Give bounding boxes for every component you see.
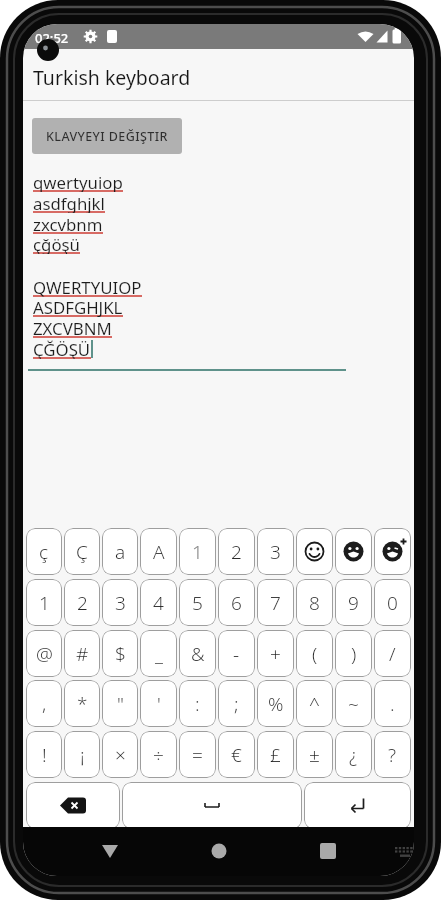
button[interactable]: ¿ — [335, 731, 372, 778]
button[interactable]: ÷ — [140, 731, 177, 778]
button[interactable]: " — [102, 680, 138, 727]
button[interactable]: ^ — [296, 680, 333, 727]
button[interactable] — [23, 827, 154, 876]
staticText: Turkish keyboard — [33, 64, 191, 91]
button[interactable]: 6 — [218, 579, 255, 626]
button[interactable]: 8 — [296, 579, 333, 626]
staticText: 02:52 — [35, 29, 69, 47]
staticText: @ — [36, 641, 53, 667]
staticText: QWERTYUIOP — [33, 276, 142, 297]
button[interactable]: ; — [218, 680, 255, 727]
button[interactable]: 2 — [64, 579, 100, 626]
button[interactable] — [122, 782, 302, 829]
button[interactable]: Ç — [64, 528, 100, 575]
staticText: e3 — [382, 539, 404, 565]
staticText: ^ — [309, 691, 320, 717]
staticText: asdfghjkl — [33, 192, 105, 213]
button[interactable]: 1 — [179, 528, 216, 575]
button[interactable]: ? — [374, 731, 411, 778]
button[interactable]: & — [179, 630, 216, 677]
button[interactable]: ! — [26, 731, 62, 778]
staticText: e1 — [304, 539, 326, 565]
button[interactable]: ± — [296, 731, 333, 778]
button[interactable]: 1 — [26, 579, 62, 626]
button[interactable]: : — [179, 680, 216, 727]
button[interactable]: e1 — [296, 528, 333, 575]
button[interactable]: $ — [102, 630, 138, 677]
button[interactable]: 7 — [257, 579, 294, 626]
button[interactable]: _ — [140, 630, 177, 677]
button[interactable]: ) — [335, 630, 372, 677]
button[interactable] — [374, 528, 411, 575]
staticText: ÷ — [153, 742, 164, 768]
staticText: zxcvbnm — [33, 213, 103, 234]
button[interactable]: / — [374, 630, 411, 677]
staticText: ) — [351, 641, 357, 667]
button[interactable] — [284, 827, 414, 876]
staticText: ! — [42, 742, 47, 768]
staticText: ? — [388, 742, 397, 768]
button[interactable]: × — [102, 731, 138, 778]
staticText: : — [195, 691, 200, 717]
button[interactable]: # — [64, 630, 100, 677]
button[interactable]: . — [374, 680, 411, 727]
button[interactable]: 4 — [140, 579, 177, 626]
button[interactable]: a — [102, 528, 138, 575]
staticText: ÇĞÖŞÜ — [33, 338, 91, 359]
button[interactable]: e2 — [335, 528, 372, 575]
button[interactable]: 3 — [102, 579, 138, 626]
button[interactable]: A — [140, 528, 177, 575]
button[interactable]: * — [64, 680, 100, 727]
staticText: 7 — [270, 590, 281, 616]
button[interactable]: 3 — [257, 528, 294, 575]
staticText: çğöşü — [33, 233, 80, 254]
button[interactable]: e3 — [374, 528, 411, 575]
button[interactable]: 5 — [179, 579, 216, 626]
button[interactable] — [154, 827, 284, 876]
button[interactable]: ~ — [335, 680, 372, 727]
button[interactable]: ç — [26, 528, 62, 575]
staticText: , — [42, 691, 47, 717]
button[interactable]: KLAVYEYI DEĞIŞTIR — [32, 118, 182, 154]
button[interactable]: 0 — [374, 579, 411, 626]
button[interactable]: ( — [296, 630, 333, 677]
staticText: ASDFGHJKL — [33, 296, 123, 317]
staticText: × — [115, 742, 126, 768]
staticText: 6 — [231, 590, 242, 616]
button[interactable] — [335, 528, 372, 575]
button[interactable] — [304, 782, 411, 829]
button[interactable]: € — [218, 731, 255, 778]
staticText: % — [268, 691, 284, 717]
button[interactable]: - — [218, 630, 255, 677]
button[interactable]: ' — [140, 680, 177, 727]
button[interactable]: % — [257, 680, 294, 727]
staticText: KLAVYEYI DEĞIŞTIR — [46, 128, 168, 145]
button[interactable]: , — [26, 680, 62, 727]
staticText: 3 — [270, 539, 281, 565]
staticText: * — [77, 691, 88, 717]
staticText: ~ — [348, 691, 359, 717]
button[interactable] — [26, 782, 120, 829]
staticText: 8 — [309, 590, 320, 616]
staticText: a — [115, 539, 126, 565]
staticText: 0 — [387, 590, 398, 616]
button[interactable]: = — [179, 731, 216, 778]
staticText: ; — [234, 691, 239, 717]
button[interactable]: 9 — [335, 579, 372, 626]
staticText: . — [390, 691, 395, 717]
button[interactable]: 2 — [218, 528, 255, 575]
staticText: / — [389, 641, 396, 667]
staticText: 2 — [77, 590, 88, 616]
staticText: ' — [157, 691, 161, 717]
staticText: 1 — [192, 539, 203, 565]
staticText: A — [153, 539, 165, 565]
staticText: - — [233, 641, 240, 667]
staticText: 9 — [348, 590, 359, 616]
button[interactable] — [296, 528, 333, 575]
button[interactable]: + — [257, 630, 294, 677]
button[interactable]: ¡ — [64, 731, 100, 778]
staticText: = — [192, 742, 203, 768]
button[interactable]: £ — [257, 731, 294, 778]
staticText: ( — [312, 641, 318, 667]
button[interactable]: @ — [26, 630, 62, 677]
